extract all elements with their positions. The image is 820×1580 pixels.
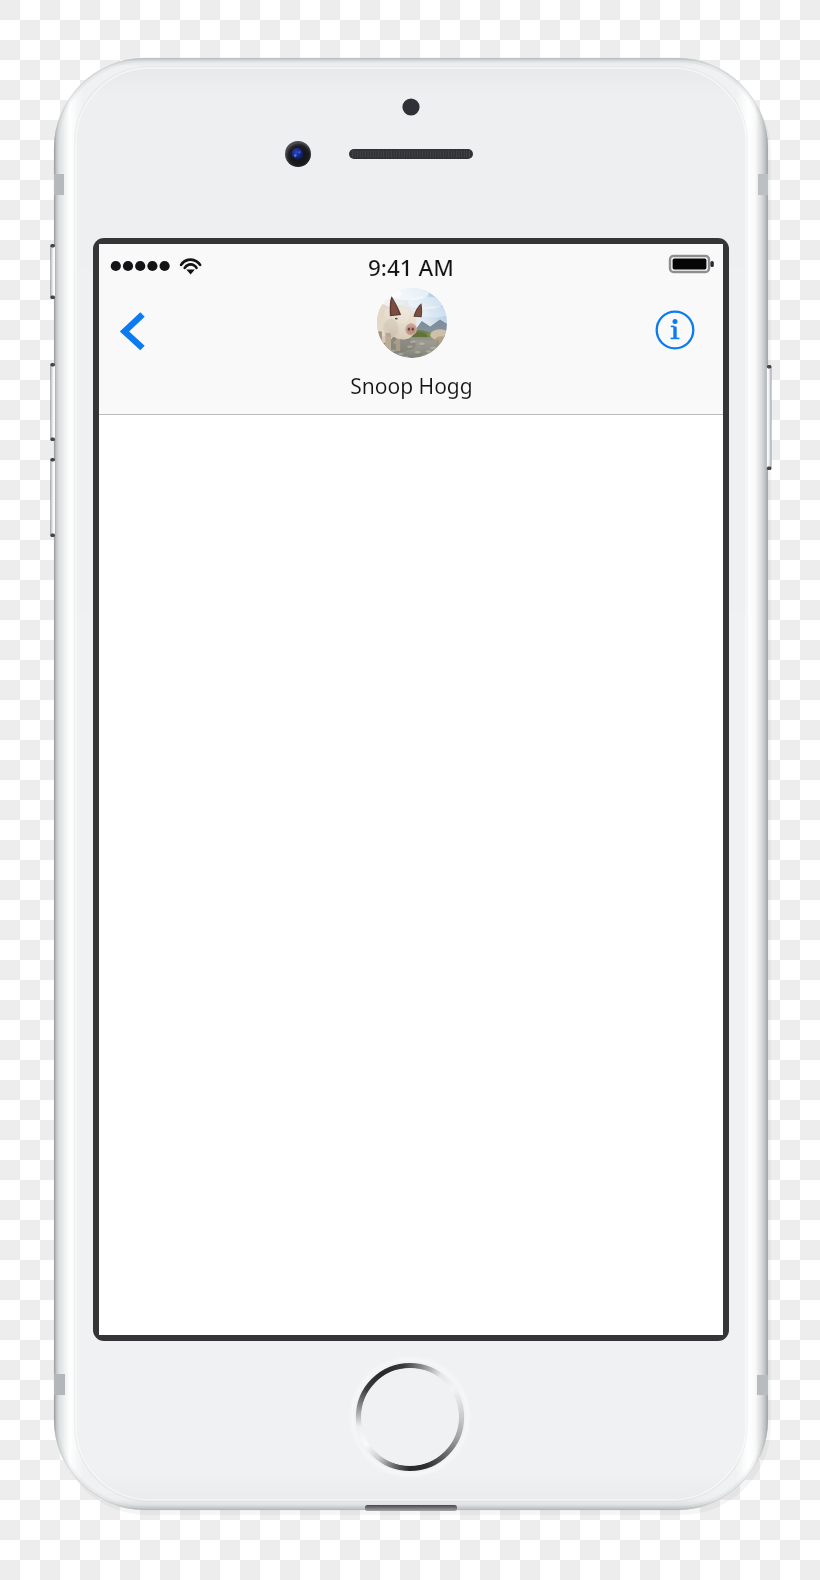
button[interactable]: Back <box>105 288 161 344</box>
staticText: 9:41 AM <box>368 252 454 283</box>
button[interactable]: Info <box>651 306 699 354</box>
button[interactable]: Snoop Hogg <box>350 282 473 401</box>
staticText: Snoop Hogg <box>350 372 473 401</box>
